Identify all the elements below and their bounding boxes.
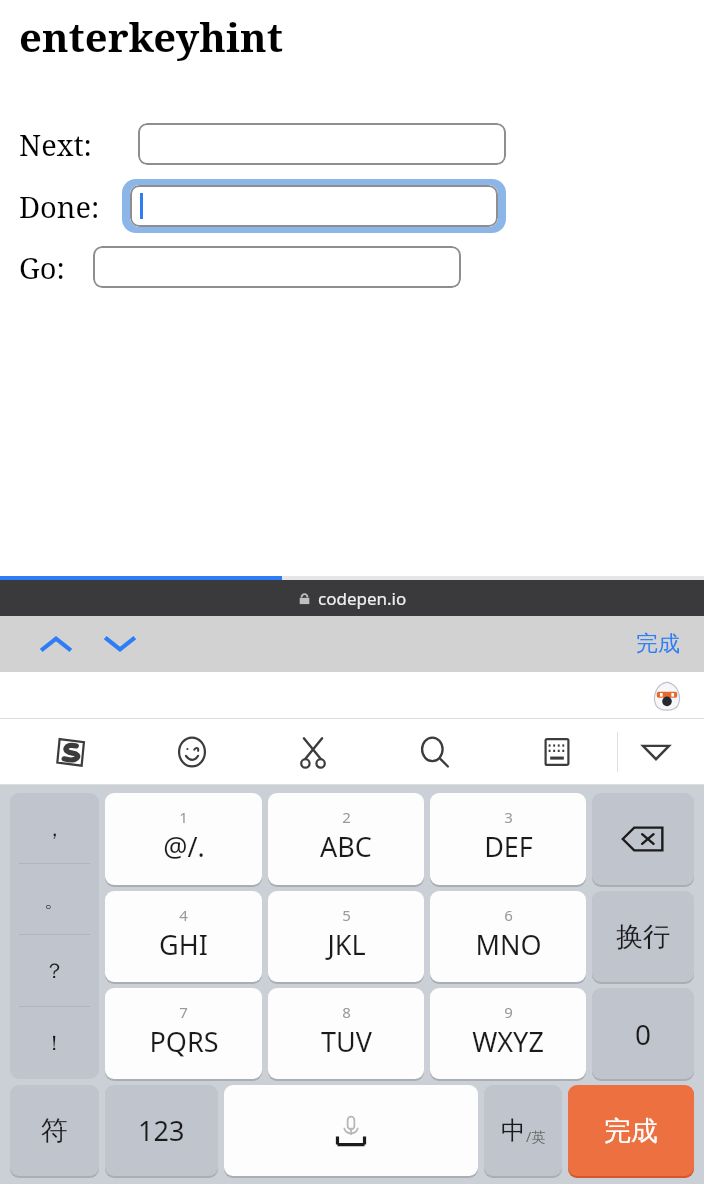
staticText: ， [44,816,65,842]
staticText: 9 [504,1002,513,1022]
button[interactable]: 6 [430,891,586,982]
button[interactable]: Input method mascot [650,679,684,713]
button[interactable]: Search [374,719,496,785]
button[interactable]: Emoji [131,719,252,785]
staticText: 6 [504,905,513,925]
button[interactable]: 完成 [568,1085,694,1176]
staticText: ABC [320,828,372,865]
button[interactable]: Delete [592,793,694,885]
staticText: 8 [342,1002,351,1022]
button[interactable]: 7 [105,988,262,1079]
staticText: codepen.io [318,587,407,610]
button[interactable]: 3 [430,793,586,885]
button[interactable]: 。 [10,864,99,935]
staticText: 5 [342,905,351,925]
button[interactable]: Previous field [34,622,78,666]
staticText: 1 [179,807,188,827]
button[interactable]: 123 [105,1085,218,1176]
button[interactable]: Hide keyboard [632,728,680,776]
button[interactable]: 中 [484,1085,562,1176]
staticText: DEF [484,828,533,865]
staticText: 完成 [604,1114,658,1148]
button[interactable]: 完成 [626,624,690,664]
staticText: 中 [501,1115,526,1146]
staticText: @/. [163,828,205,865]
button[interactable]: Next field [98,622,142,666]
button[interactable]: 1 [105,793,262,885]
staticText: MNO [475,926,542,963]
staticText: 4 [179,905,188,925]
button[interactable]: ！ [10,1007,99,1079]
button[interactable]: ， [10,793,99,864]
staticText: 2 [342,807,351,827]
button[interactable]: 0 [592,988,694,1079]
button[interactable] [130,185,498,227]
button[interactable]: 2 [268,793,424,885]
button[interactable]: 符 [10,1085,99,1176]
staticText: TUV [321,1023,372,1060]
button[interactable]: 8 [268,988,424,1079]
staticText: GHI [159,926,208,963]
staticText: WXYZ [472,1023,544,1060]
staticText: ？ [44,958,65,984]
button[interactable]: 4 [105,891,262,982]
staticText: 0 [635,1015,652,1053]
button[interactable]: 5 [268,891,424,982]
staticText: 完成 [636,630,680,658]
staticText: 3 [504,807,513,827]
staticText: ！ [44,1030,65,1056]
button[interactable] [93,246,461,288]
staticText: Done: [19,187,100,226]
button[interactable]: Clipboard cut [252,719,374,785]
button[interactable]: codepen.io [0,580,704,616]
button[interactable]: Sogou logo [10,719,131,785]
staticText: 。 [44,887,65,913]
staticText: JKL [327,926,366,963]
staticText: Go: [19,248,65,287]
staticText: 符 [41,1114,68,1148]
button[interactable]: ？ [10,935,99,1007]
button[interactable]: Keyboard layout [496,719,618,785]
staticText: 7 [179,1002,188,1022]
button[interactable]: 9 [430,988,586,1079]
button[interactable] [138,123,506,165]
staticText: enterkeyhint [19,9,283,63]
staticText: Next: [19,125,92,164]
staticText: /英 [526,1127,546,1146]
staticText: PQRS [149,1023,219,1060]
button[interactable]: 换行 [592,891,694,982]
button[interactable] [224,1085,478,1176]
staticText: 换行 [616,920,670,954]
staticText: 123 [138,1112,185,1149]
